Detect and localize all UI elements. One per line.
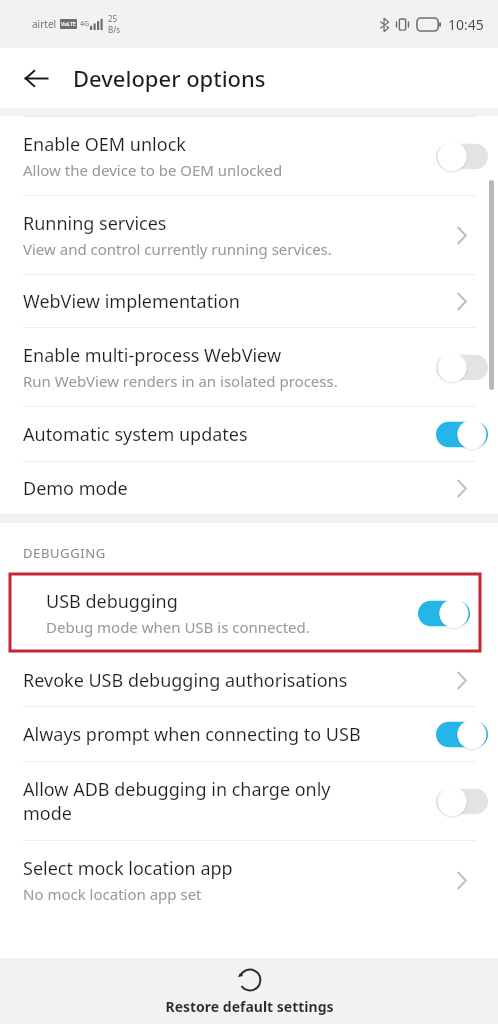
- staticText: Automatic system updates: [23, 422, 248, 447]
- staticText: Revoke USB debugging authorisations: [23, 668, 348, 693]
- staticText: Allow the device to be OEM unlocked: [23, 160, 283, 180]
- staticText: Enable multi-process WebView: [23, 343, 282, 368]
- button[interactable]: Enable OEM unlock: [0, 117, 498, 195]
- staticText: airtel: [32, 17, 57, 31]
- button[interactable]: Allow ADB debugging in charge only mode: [0, 762, 498, 840]
- button[interactable]: Revoke USB debugging authorisations: [0, 654, 498, 706]
- staticText: View and control currently running servi…: [23, 239, 332, 259]
- button[interactable]: Running services: [0, 196, 498, 274]
- staticText: VoLTE: [61, 21, 76, 28]
- button[interactable]: Back: [14, 56, 58, 100]
- staticText: Always prompt when connecting to USB: [23, 722, 361, 747]
- button[interactable]: Demo mode: [0, 462, 498, 514]
- button[interactable]: Enable multi-process WebView: [0, 328, 498, 406]
- staticText: B/s: [108, 24, 121, 35]
- staticText: Enable OEM unlock: [23, 132, 186, 157]
- button[interactable]: Select mock location app: [0, 841, 498, 919]
- staticText: No mock location app set: [23, 884, 202, 904]
- button[interactable]: Restore default settings: [0, 958, 498, 1024]
- button[interactable]: WebView implementation: [0, 275, 498, 327]
- staticText: USB debugging: [46, 589, 178, 614]
- staticText: Restore default settings: [165, 997, 334, 1016]
- button[interactable]: Automatic system updates: [0, 407, 498, 461]
- staticText: Allow ADB debugging in charge only mode: [23, 777, 331, 825]
- button[interactable]: USB debugging: [10, 574, 480, 651]
- staticText: Demo mode: [23, 476, 128, 501]
- staticText: DEBUGGING: [23, 544, 106, 562]
- button[interactable]: Always prompt when connecting to USB: [0, 707, 498, 761]
- staticText: 10:45: [448, 15, 484, 34]
- staticText: 4G: [80, 19, 90, 29]
- staticText: Developer options: [73, 63, 266, 93]
- staticText: Debug mode when USB is connected.: [46, 617, 310, 637]
- staticText: WebView implementation: [23, 289, 240, 314]
- staticText: Select mock location app: [23, 856, 233, 881]
- staticText: Running services: [23, 211, 167, 236]
- staticText: Run WebView renders in an isolated proce…: [23, 371, 338, 391]
- staticText: 25: [108, 13, 118, 24]
